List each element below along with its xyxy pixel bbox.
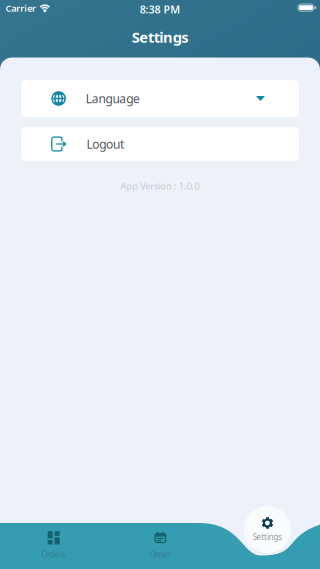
staticText: Carrier <box>5 2 36 14</box>
staticText: 8:38 PM <box>140 2 180 16</box>
button[interactable]: Orders <box>19 533 89 557</box>
staticText: Settings <box>253 532 282 542</box>
button[interactable]: Order <box>125 533 195 557</box>
staticText: Order <box>150 549 171 560</box>
staticText: Logout <box>86 136 124 152</box>
button[interactable]: Logout <box>21 127 299 161</box>
staticText: Language <box>86 90 140 106</box>
staticText: Orders <box>41 549 66 560</box>
staticText: App Version : 1.0.0 <box>120 180 199 192</box>
button[interactable]: Settings <box>244 506 291 553</box>
button[interactable]: Language <box>21 80 299 117</box>
staticText: Settings <box>132 27 188 47</box>
